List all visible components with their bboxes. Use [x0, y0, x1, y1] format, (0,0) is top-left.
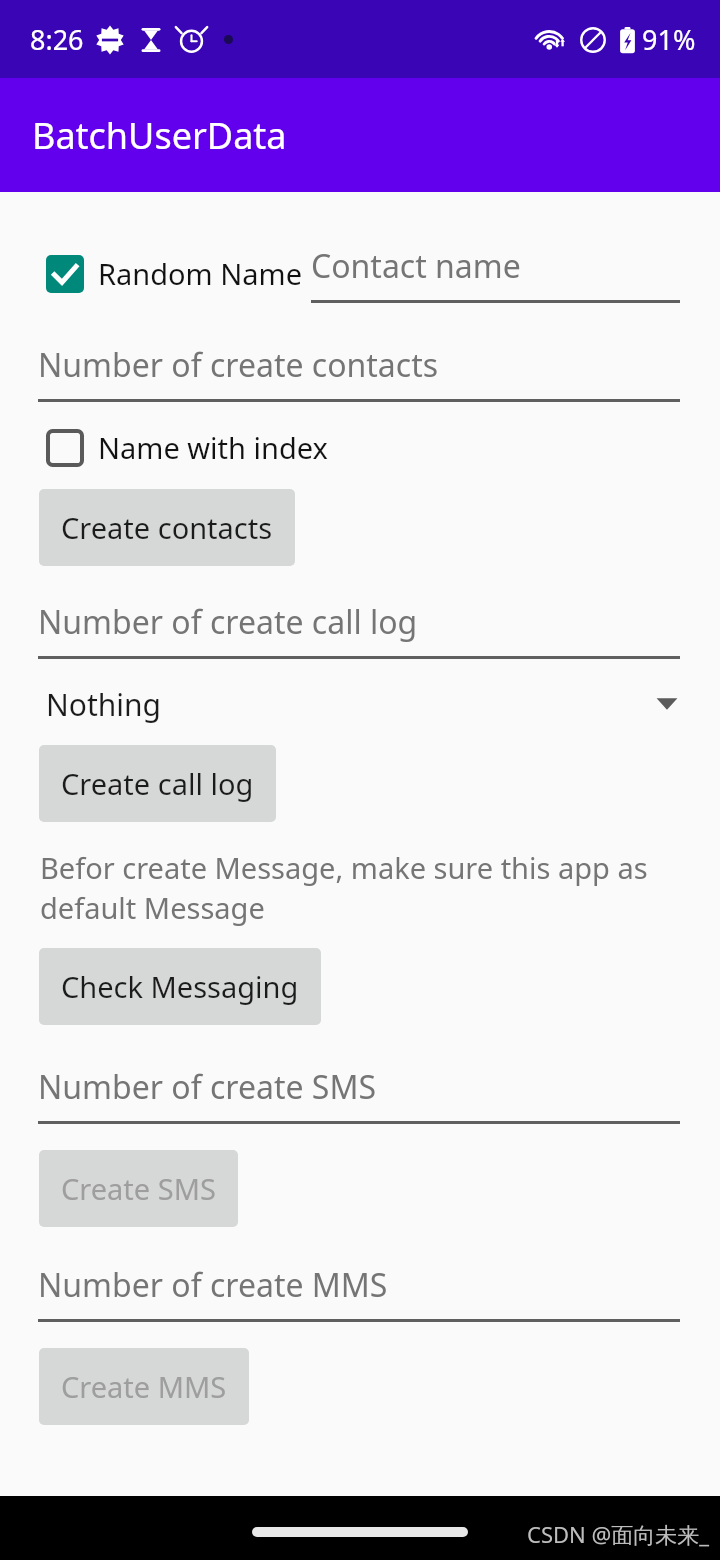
button[interactable]: Contact name	[311, 244, 680, 303]
button[interactable]: Create MMS	[39, 1348, 249, 1425]
staticText: Create call log	[61, 764, 254, 803]
staticText: Name with index	[98, 428, 328, 467]
button[interactable]: Name with index	[46, 428, 328, 467]
button[interactable]: Nothing	[46, 669, 680, 739]
button[interactable]: Create SMS	[39, 1150, 238, 1227]
staticText: 91%	[642, 21, 696, 58]
staticText: Create SMS	[61, 1169, 216, 1208]
staticText: Contact name	[311, 244, 521, 288]
button[interactable]: Number of create call log	[38, 600, 680, 659]
staticText: Number of create SMS	[38, 1065, 376, 1109]
staticText: Befor create Message, make sure this app…	[40, 848, 660, 928]
staticText: CSDN @面向未来_	[527, 1519, 710, 1549]
button[interactable]: Check Messaging	[39, 948, 321, 1025]
button[interactable]: Number of create SMS	[38, 1065, 680, 1124]
button[interactable]: Number of create contacts	[38, 343, 680, 402]
staticText: Create contacts	[61, 508, 273, 547]
button[interactable]: Number of create MMS	[38, 1263, 680, 1322]
staticText: Number of create call log	[38, 600, 418, 644]
staticText: 8:26	[30, 21, 84, 58]
staticText: Number of create contacts	[38, 343, 439, 387]
button[interactable]: Create call log	[39, 745, 276, 822]
staticText: Number of create MMS	[38, 1263, 388, 1307]
button[interactable]: Create contacts	[39, 489, 295, 566]
staticText: Create MMS	[61, 1367, 227, 1406]
staticText: Check Messaging	[61, 967, 299, 1006]
staticText: BatchUserData	[32, 111, 287, 160]
staticText: Nothing	[46, 684, 162, 725]
staticText: Random Name	[98, 254, 303, 293]
button[interactable]: Random Name	[46, 254, 303, 293]
